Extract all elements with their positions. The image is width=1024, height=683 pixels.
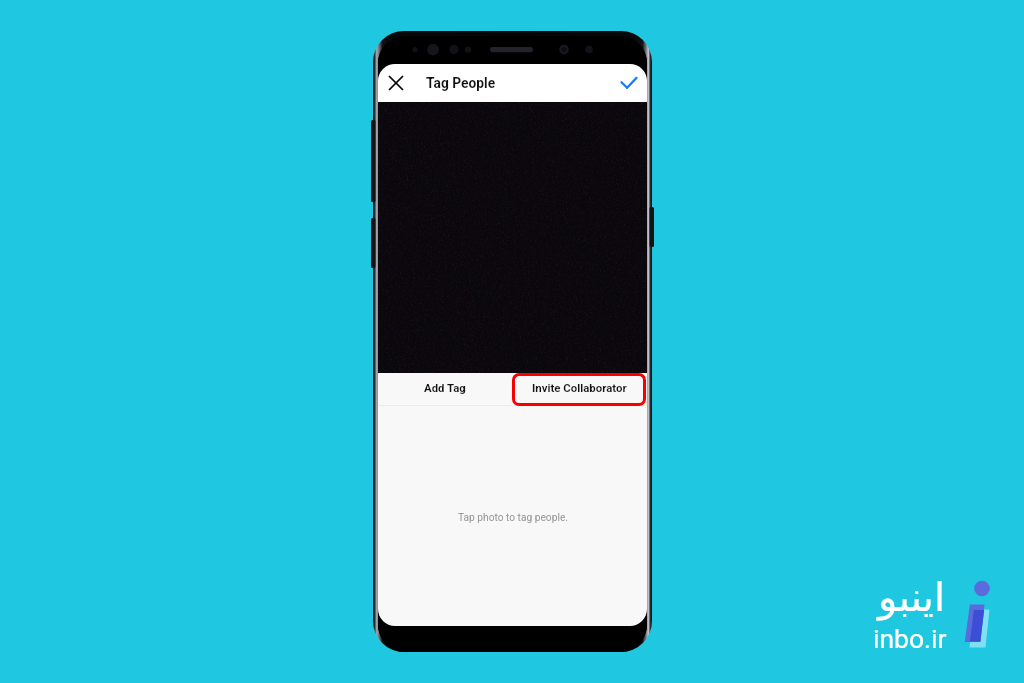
button[interactable]: Add Tag	[378, 373, 512, 406]
staticText: Tap photo to tag people.	[458, 512, 568, 524]
staticText: Add Tag	[424, 381, 466, 394]
button[interactable]: Close	[381, 68, 411, 98]
button[interactable]: Done	[614, 68, 644, 98]
button[interactable]: Invite Collaborator	[512, 373, 647, 406]
staticText: inbo.ir	[873, 623, 947, 654]
staticText: Tag People	[426, 75, 496, 91]
staticText: Invite Collaborator	[532, 381, 627, 394]
staticText: اینبو	[878, 574, 946, 621]
